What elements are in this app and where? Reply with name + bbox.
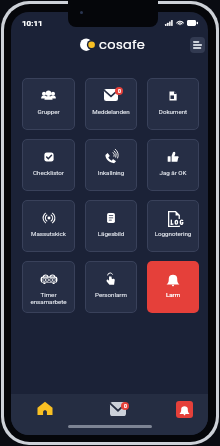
- button[interactable]: Massutskick: [22, 200, 75, 252]
- button[interactable]: Menu: [190, 37, 205, 53]
- button[interactable]: Dokument: [147, 78, 199, 130]
- staticText: 0: [118, 88, 121, 94]
- staticText: Larm: [147, 291, 199, 298]
- button[interactable]: Timer ensamarbete: [22, 261, 75, 313]
- staticText: Timer ensamarbete: [22, 291, 75, 305]
- button[interactable]: Jag är OK: [147, 139, 199, 191]
- staticText: Inkallning: [85, 169, 137, 176]
- button[interactable]: Larm: [147, 261, 199, 313]
- button[interactable]: Lägesbild: [85, 200, 137, 252]
- button[interactable]: Checklistor: [22, 139, 75, 191]
- staticText: Loggnotering: [147, 230, 199, 237]
- staticText: Jag är OK: [147, 169, 199, 176]
- staticText: cosafe: [99, 35, 146, 53]
- staticText: Lägesbild: [85, 230, 137, 237]
- staticText: Meddelanden: [85, 108, 137, 115]
- button[interactable]: Personlarm: [85, 261, 137, 313]
- button[interactable]: Alarm: [176, 401, 193, 418]
- button[interactable]: Home: [30, 397, 60, 421]
- staticText: Grupper: [22, 108, 75, 115]
- button[interactable]: Inkallning: [85, 139, 137, 191]
- staticText: 10:11: [22, 19, 43, 28]
- staticText: Personlarm: [85, 291, 137, 298]
- button[interactable]: Loggnotering: [147, 200, 199, 252]
- staticText: Dokument: [147, 108, 199, 115]
- button[interactable]: Grupper: [22, 78, 75, 130]
- staticText: Massutskick: [22, 230, 75, 237]
- button[interactable]: 0: [85, 78, 137, 130]
- button[interactable]: Messages: [103, 397, 133, 421]
- staticText: Checklistor: [22, 169, 75, 176]
- staticText: 0: [124, 403, 127, 409]
